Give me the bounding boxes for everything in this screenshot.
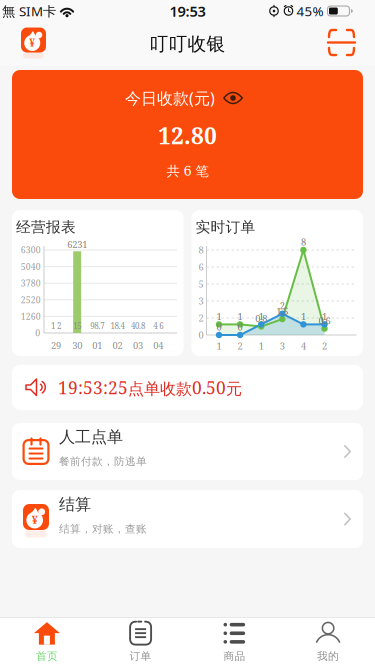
staticText: 结算 [59,495,91,514]
staticText: 1.5 [276,305,288,317]
staticText: 無 SIM卡 [2,2,56,20]
staticText: 2 [238,340,243,352]
staticText: 1 [322,310,327,323]
button[interactable]: ¥ [12,490,363,548]
staticText: 0 [216,321,221,333]
staticText: 实时订单 [195,218,255,236]
button[interactable]: 19:53:25点单收款0.50元 [12,365,363,410]
staticText: 1 [216,310,221,323]
staticText: 02 [113,339,123,352]
staticText: 共 6 笔 [166,160,208,180]
staticText: 6300 [21,244,41,256]
staticText: 2 [198,312,203,324]
button[interactable]: 我的 [288,619,368,665]
staticText: 0.6 [318,314,330,327]
staticText: 0 [238,321,243,333]
staticText: 6 [198,261,203,273]
staticText: 6231 [67,238,87,251]
staticText: 1 [259,340,264,352]
staticText: 餐前付款，防逃单 [59,455,147,468]
staticText: 叮叮收银 [149,32,225,55]
staticText: 01 [92,339,102,352]
staticText: 结算，对账，查账 [59,522,147,535]
staticText: 0 [35,327,40,339]
button[interactable] [223,92,243,104]
staticText: 5040 [21,261,41,272]
staticText: 1 [301,310,306,323]
staticText: 12.80 [158,120,217,151]
staticText: 1 2 [51,321,61,331]
staticText: 04 [153,339,163,352]
staticText: 29 [51,339,61,352]
staticText: 3 [280,340,285,352]
staticText: ¥ [32,512,38,527]
button[interactable]: 订单 [101,619,181,665]
staticText: 今日收款(元) [125,87,215,109]
staticText: 首页 [36,650,58,663]
staticText: 1260 [21,310,41,322]
staticText: 人工点单 [59,427,123,447]
staticText: 2520 [21,294,41,306]
staticText: 19:53 [169,1,205,21]
staticText: 18.4 [111,321,125,331]
staticText: 2 [280,299,285,312]
staticText: 5 [198,278,203,290]
staticText: 3 [198,295,203,307]
button[interactable] [329,30,354,55]
staticText: 1 [238,310,243,323]
staticText: ¥ [29,36,35,49]
staticText: 经营报表 [16,218,76,236]
staticText: 1 [259,310,264,323]
staticText: 1 [216,340,221,352]
staticText: 4 6 [153,321,163,331]
staticText: 0.8 [255,312,267,325]
staticText: 8 [301,236,306,248]
staticText: 19:53:25点单收款0.50元 [58,376,242,399]
staticText: 30 [72,339,82,352]
button[interactable]: 人工点单 [12,423,363,480]
staticText: 3780 [21,277,41,289]
staticText: 订单 [130,650,152,663]
staticText: 15 [73,321,81,331]
staticText: 我的 [317,650,339,663]
staticText: 40.8 [131,321,145,331]
staticText: 8 [198,244,203,256]
staticText: 03 [133,339,143,352]
staticText: 45% [296,2,323,20]
staticText: 4 [301,340,306,352]
staticText: 2 [322,340,327,352]
button[interactable]: 商品 [194,619,274,665]
staticText: 98.7 [90,321,104,331]
button[interactable]: 首页 [7,619,87,665]
staticText: 0 [198,329,203,341]
staticText: 商品 [223,650,245,663]
